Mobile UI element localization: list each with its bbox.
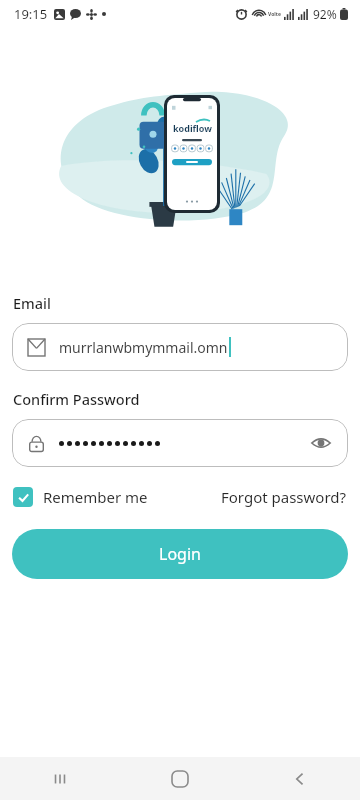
button[interactable]: Home [120,757,240,800]
button[interactable]: Remember me [13,487,148,507]
staticText: Remember me [43,487,148,507]
staticText: Volte [268,11,281,18]
button[interactable]: Login [12,529,348,579]
button[interactable]: Back [240,757,360,800]
staticText: Email [13,293,51,313]
staticText: murrlanwbmymmail.omn [59,338,228,357]
staticText: kodiflow [173,122,212,134]
staticText: Confirm Password [13,389,140,409]
staticText: 19:15 [14,5,48,23]
button[interactable]: Forgot password? [221,487,347,507]
staticText: Login [159,543,201,565]
button[interactable]: Recent apps [0,757,120,800]
button[interactable]: Show password [308,430,334,456]
button[interactable]: murrlanwbmymmail.omn [12,323,348,371]
staticText: Forgot password? [221,487,347,507]
button[interactable]: Show password [12,419,348,467]
staticText: 92% [313,6,337,22]
